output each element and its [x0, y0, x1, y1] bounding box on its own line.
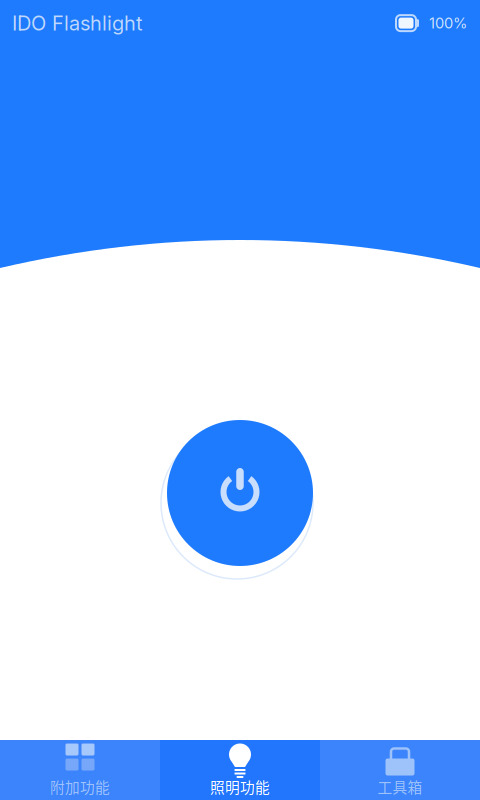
staticText: IDO Flashlight: [12, 11, 143, 35]
button[interactable]: 附加功能: [0, 740, 160, 800]
staticText: 附加功能: [50, 776, 110, 797]
button[interactable]: Battery 100 percent: [396, 14, 467, 32]
button[interactable]: Toggle flashlight: [155, 403, 325, 583]
button[interactable]: 工具箱: [320, 740, 480, 800]
staticText: 照明功能: [210, 776, 270, 797]
button[interactable]: 照明功能: [160, 740, 320, 800]
staticText: 100%: [429, 14, 467, 32]
staticText: 工具箱: [377, 776, 422, 797]
